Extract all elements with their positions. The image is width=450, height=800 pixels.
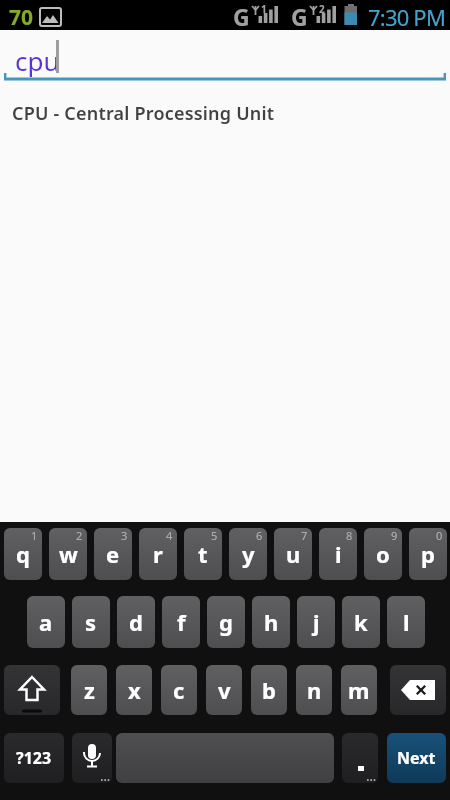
button[interactable]: i	[319, 528, 357, 580]
staticText: t	[198, 539, 208, 569]
staticText: 6	[256, 528, 263, 543]
staticText: 0	[436, 528, 443, 543]
staticText: 5	[211, 528, 218, 543]
button[interactable]: r	[139, 528, 177, 580]
staticText: e	[106, 539, 120, 569]
button[interactable]: l	[387, 596, 425, 648]
button[interactable]	[72, 733, 112, 783]
staticText: d	[129, 607, 143, 637]
staticText: 1	[261, 2, 267, 16]
button[interactable]: j	[297, 596, 335, 648]
staticText: q	[16, 539, 30, 569]
button[interactable]: a	[27, 596, 65, 648]
button[interactable]: s	[72, 596, 110, 648]
staticText: y	[242, 539, 255, 569]
staticText: u	[286, 539, 301, 569]
staticText: f	[177, 607, 186, 637]
button[interactable]: c	[161, 665, 197, 715]
button[interactable]: CPU - Central Processing Unit	[0, 95, 450, 129]
staticText: k	[354, 607, 368, 637]
staticText: CPU - Central Processing Unit	[12, 101, 275, 126]
button[interactable]: Next	[387, 733, 446, 783]
staticText: g	[219, 607, 233, 637]
button[interactable]: z	[71, 665, 107, 715]
staticText: c	[173, 675, 185, 705]
staticText: a	[39, 607, 53, 637]
staticText: 9	[391, 528, 398, 543]
button[interactable]: ?123	[4, 733, 64, 783]
staticText: n	[307, 675, 322, 705]
staticText: cpu	[15, 43, 60, 78]
button[interactable]: w	[49, 528, 87, 580]
staticText: w	[59, 539, 78, 569]
button[interactable]: h	[252, 596, 290, 648]
staticText: 7	[301, 528, 308, 543]
staticText: i	[335, 539, 342, 569]
button[interactable]: k	[342, 596, 380, 648]
staticText: v	[218, 675, 231, 705]
staticText: 7:30 PM	[368, 2, 446, 32]
button[interactable]: f	[162, 596, 200, 648]
staticText: j	[313, 607, 320, 637]
staticText: s	[85, 607, 97, 637]
button[interactable]: p	[409, 528, 447, 580]
button[interactable]: t	[184, 528, 222, 580]
staticText: 2	[319, 2, 325, 16]
staticText: z	[84, 675, 95, 705]
staticText: b	[262, 675, 276, 705]
button[interactable]: g	[207, 596, 245, 648]
button[interactable]	[342, 733, 378, 783]
button[interactable]: u	[274, 528, 312, 580]
button[interactable]: v	[206, 665, 242, 715]
button[interactable]: cpu	[0, 30, 450, 90]
staticText: 1	[31, 528, 38, 543]
staticText: h	[264, 607, 279, 637]
button[interactable]: m	[341, 665, 377, 715]
button[interactable]: d	[117, 596, 155, 648]
staticText: 8	[346, 528, 353, 543]
button[interactable]	[116, 733, 334, 783]
button[interactable]: q	[4, 528, 42, 580]
staticText: x	[128, 675, 141, 705]
staticText: 2	[76, 528, 83, 543]
button[interactable]: n	[296, 665, 332, 715]
button[interactable]: y	[229, 528, 267, 580]
staticText: m	[348, 675, 370, 705]
button[interactable]: e	[94, 528, 132, 580]
button[interactable]: b	[251, 665, 287, 715]
staticText: 70	[9, 3, 34, 32]
staticText: 3	[121, 528, 128, 543]
staticText: G	[291, 1, 308, 31]
button[interactable]: x	[116, 665, 152, 715]
staticText: G	[233, 1, 250, 31]
staticText: Next	[397, 747, 436, 769]
button[interactable]	[4, 665, 60, 715]
staticText: l	[403, 607, 410, 637]
staticText: 4	[166, 528, 173, 543]
staticText: r	[153, 539, 163, 569]
button[interactable]	[390, 665, 446, 715]
staticText: o	[376, 539, 390, 569]
staticText: p	[421, 539, 435, 569]
staticText: ?123	[16, 747, 52, 769]
button[interactable]: o	[364, 528, 402, 580]
